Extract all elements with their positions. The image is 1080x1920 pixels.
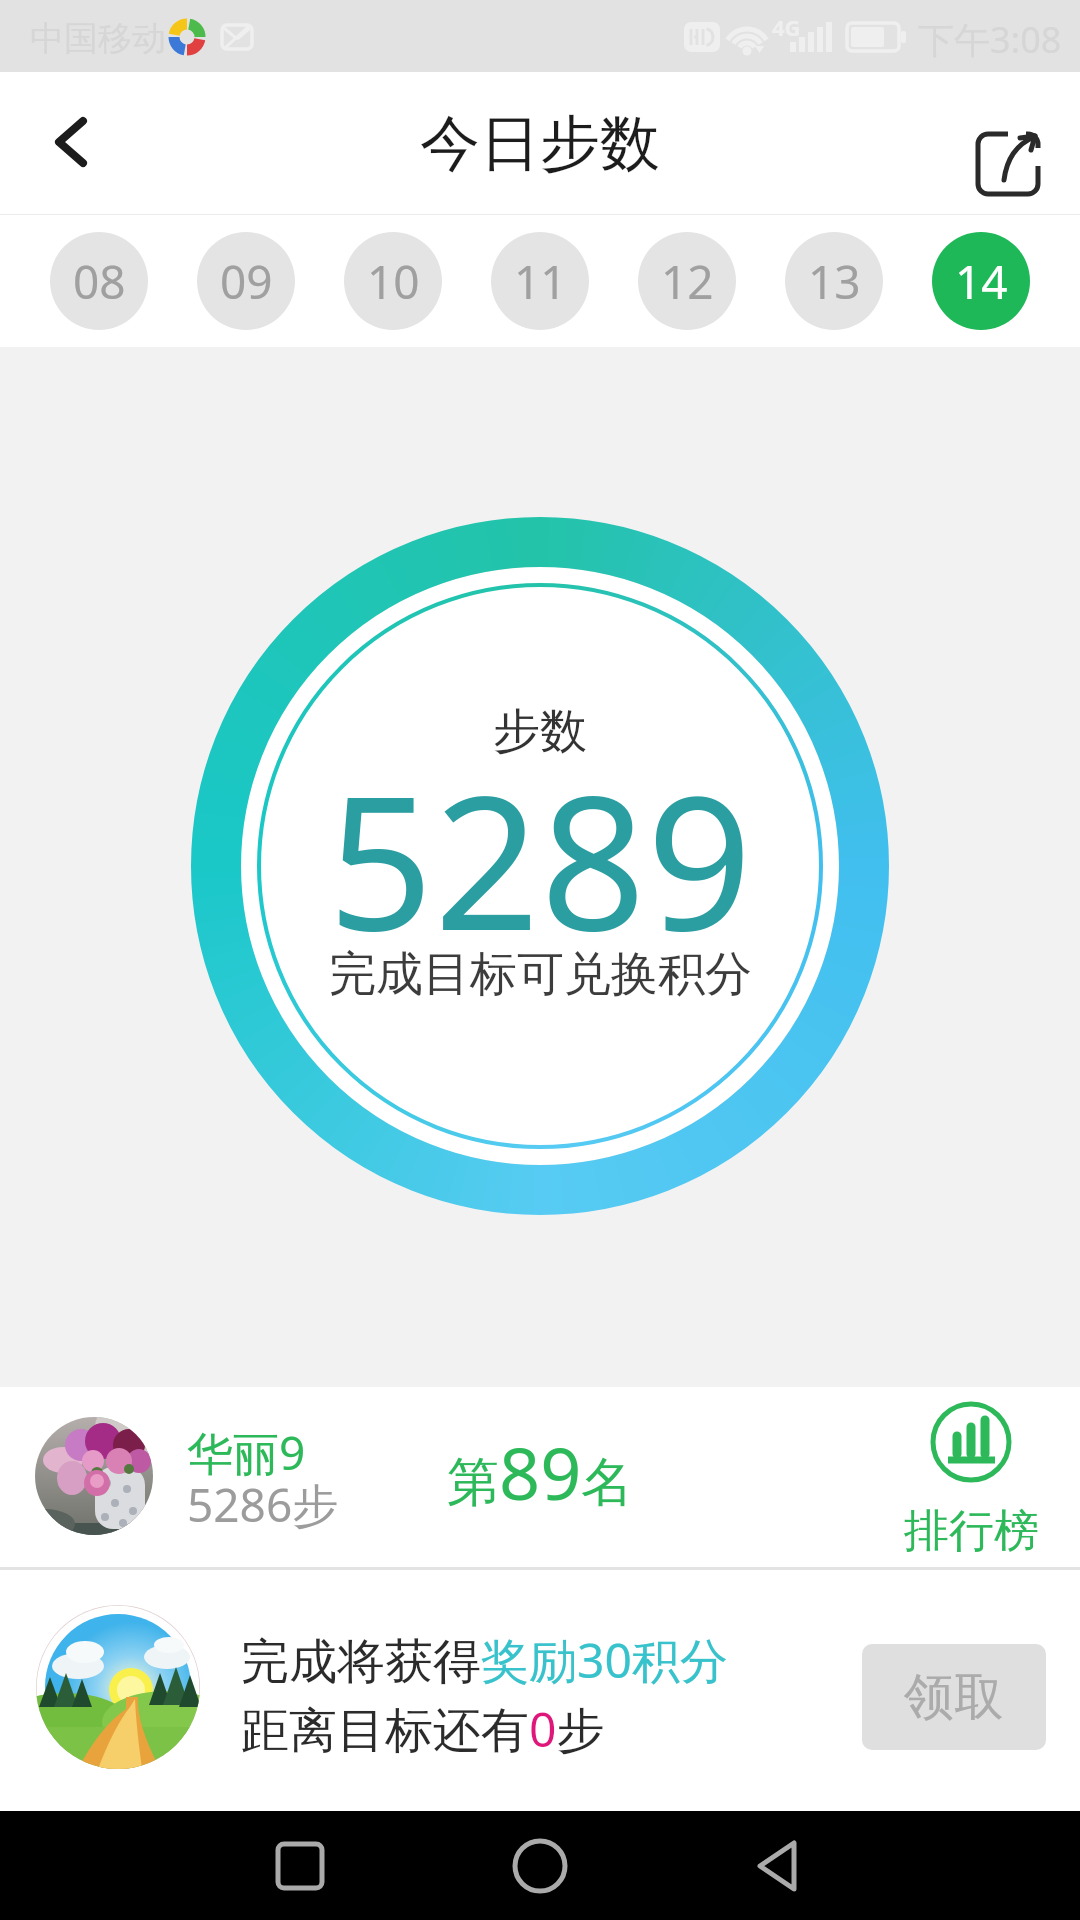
button[interactable]: 09: [197, 232, 295, 330]
staticText: 08: [73, 250, 126, 313]
staticText: 11: [514, 250, 567, 313]
staticText: 步数: [493, 702, 587, 761]
staticText: 华丽9: [187, 1421, 306, 1484]
staticText: 领取: [904, 1666, 1004, 1729]
staticText: 5286步: [187, 1473, 339, 1536]
staticText: 12: [661, 250, 714, 313]
staticText: 4G: [772, 12, 801, 42]
button[interactable]: [718, 1811, 838, 1920]
staticText: 下午3:08: [918, 15, 1062, 64]
staticText: 09: [220, 250, 273, 313]
button[interactable]: [958, 114, 1058, 214]
staticText: 第89名: [447, 1423, 634, 1521]
staticText: 今日步数: [420, 106, 660, 182]
button[interactable]: 10: [344, 232, 442, 330]
staticText: 14: [955, 250, 1008, 313]
button[interactable]: 11: [491, 232, 589, 330]
staticText: 排行榜: [904, 1503, 1039, 1560]
button[interactable]: 08: [50, 232, 148, 330]
button[interactable]: [480, 1811, 600, 1920]
button[interactable]: [240, 1811, 360, 1920]
button[interactable]: 华丽9: [0, 1387, 1080, 1567]
button[interactable]: 13: [785, 232, 883, 330]
button[interactable]: 12: [638, 232, 736, 330]
button[interactable]: 14: [932, 232, 1030, 330]
staticText: 中国移动: [30, 17, 166, 60]
button[interactable]: 排行榜: [900, 1395, 1050, 1565]
button[interactable]: [30, 102, 110, 182]
button[interactable]: 领取: [862, 1644, 1046, 1750]
staticText: 距离目标还有0步: [241, 1696, 605, 1762]
staticText: 完成将获得奖励30积分: [241, 1627, 728, 1693]
staticText: 完成目标可兑换积分: [329, 945, 752, 1004]
staticText: 10: [367, 250, 420, 313]
staticText: 13: [808, 250, 861, 313]
staticText: 5289: [328, 733, 753, 984]
